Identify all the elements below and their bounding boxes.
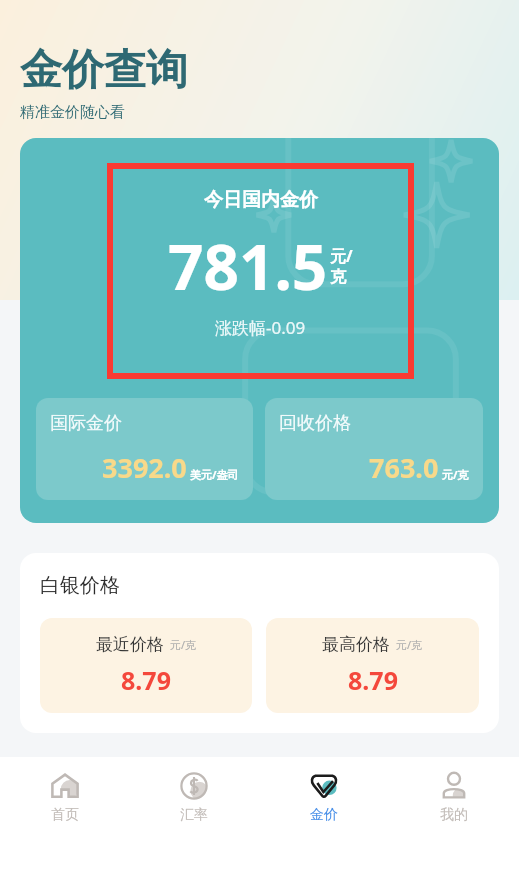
other: 汇率	[179, 771, 209, 801]
staticText: 金价	[310, 806, 338, 824]
staticText: 3392.0	[102, 449, 187, 486]
staticText: 回收价格	[279, 412, 351, 435]
staticText: 最近价格	[96, 634, 164, 655]
staticText: 涨跌幅-0.09	[215, 316, 306, 339]
button[interactable]: 今日国内金价	[20, 138, 499, 523]
staticText: 8.79	[121, 663, 171, 697]
staticText: 今日国内金价	[204, 188, 318, 212]
staticText: 8.79	[348, 663, 398, 697]
other: 我的	[439, 771, 469, 801]
staticText: 首页	[51, 806, 79, 824]
button[interactable]: 首页	[0, 757, 129, 884]
button[interactable]: 金价	[259, 757, 389, 884]
button[interactable]: 回收价格	[265, 398, 483, 500]
staticText: 781.5	[168, 224, 328, 308]
staticText: 汇率	[180, 806, 208, 824]
button[interactable]: 最高价格	[266, 618, 479, 713]
other: 金价	[309, 771, 339, 801]
staticText: 白银价格	[40, 573, 120, 598]
staticText: 我的	[440, 806, 468, 824]
button[interactable]: 我的	[389, 757, 519, 884]
staticText: 元/克	[170, 637, 197, 652]
staticText: 763.0	[369, 449, 439, 486]
staticText: 精准金价随心看	[20, 103, 125, 122]
staticText: 元/克	[442, 467, 469, 482]
staticText: 金价查询	[20, 44, 188, 97]
button[interactable]: 最近价格	[40, 618, 252, 713]
staticText: 美元/盎司	[190, 467, 239, 482]
staticText: 最高价格	[322, 634, 390, 655]
button[interactable]: 汇率	[129, 757, 259, 884]
staticText: 元/	[330, 245, 353, 267]
button[interactable]: 国际金价	[36, 398, 253, 500]
staticText: 克	[330, 267, 346, 287]
button[interactable]: 白银价格	[20, 553, 499, 733]
other: 首页	[50, 771, 80, 801]
staticText: 元/克	[396, 637, 423, 652]
staticText: 国际金价	[50, 412, 122, 435]
